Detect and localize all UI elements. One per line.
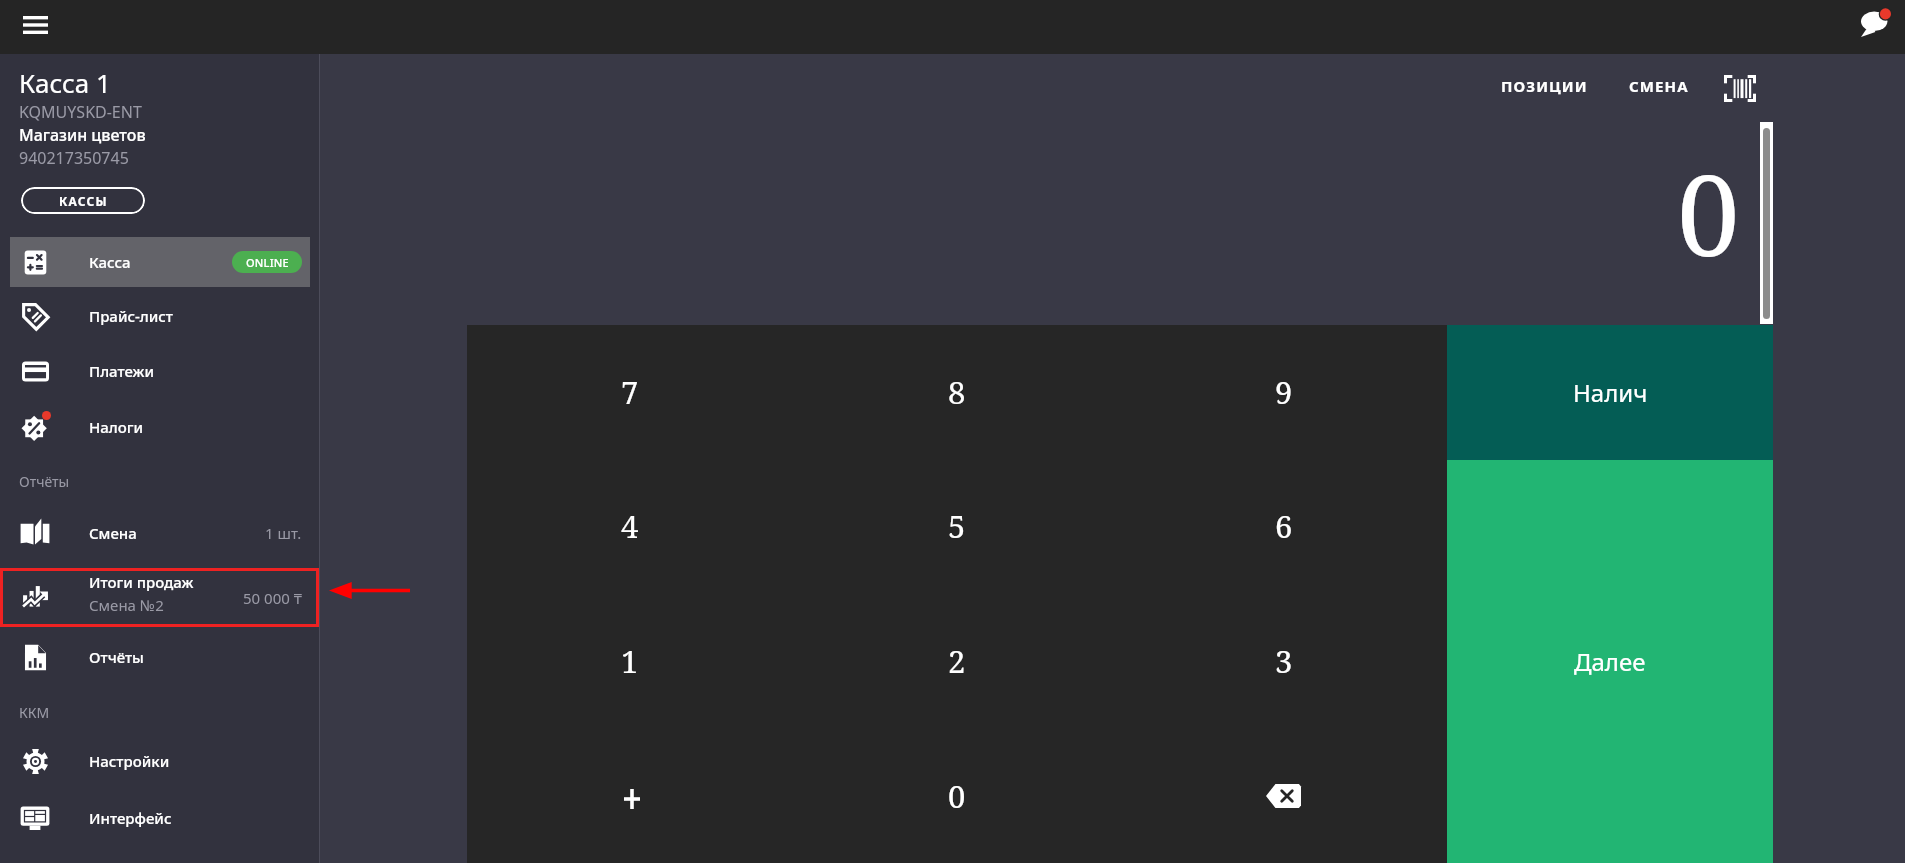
staticText: Отчёты bbox=[19, 472, 70, 491]
staticText: 8 bbox=[948, 371, 966, 413]
button[interactable]: 3 bbox=[1120, 593, 1447, 728]
staticText: Далее bbox=[1574, 645, 1646, 678]
button[interactable]: Backspace bbox=[1120, 728, 1447, 863]
staticText: Касса bbox=[89, 252, 131, 272]
button[interactable]: Налоги bbox=[0, 400, 319, 453]
staticText: 2 bbox=[948, 640, 966, 682]
staticText: Интерфейс bbox=[89, 808, 172, 828]
staticText: Настройки bbox=[89, 751, 170, 771]
staticText: 1 шт. bbox=[265, 523, 302, 543]
staticText: 9 bbox=[1275, 371, 1293, 413]
button[interactable]: Messages bbox=[1852, 0, 1900, 47]
button[interactable]: Платежи bbox=[0, 345, 319, 397]
staticText: Смена bbox=[89, 523, 137, 543]
staticText: 5 bbox=[948, 505, 966, 547]
button[interactable]: Настройки bbox=[0, 734, 319, 788]
button[interactable]: Налич bbox=[1447, 325, 1773, 460]
button[interactable]: Далее bbox=[1447, 460, 1773, 863]
button[interactable]: Scan barcode bbox=[1719, 67, 1761, 109]
button[interactable]: КАССЫ bbox=[21, 187, 145, 214]
staticText: 0 bbox=[1677, 136, 1740, 289]
staticText: Налич bbox=[1573, 376, 1648, 409]
staticText: СМЕНА bbox=[1629, 76, 1689, 96]
button[interactable] bbox=[467, 728, 793, 863]
staticText: Отчёты bbox=[89, 647, 144, 667]
staticText: KQMUYSKD-ENT bbox=[19, 101, 142, 123]
button[interactable]: 7 bbox=[467, 325, 793, 459]
staticText: Смена №2 bbox=[89, 595, 164, 615]
staticText: Налоги bbox=[89, 417, 144, 437]
button[interactable]: ПОЗИЦИИ bbox=[1493, 67, 1596, 105]
button[interactable]: Интерфейс bbox=[0, 791, 319, 845]
staticText: Итоги продаж bbox=[89, 572, 194, 592]
staticText: Прайс-лист bbox=[89, 306, 174, 326]
button[interactable]: 2 bbox=[793, 593, 1120, 728]
staticText: 0 bbox=[948, 775, 966, 817]
staticText: Магазин цветов bbox=[19, 124, 146, 146]
button[interactable]: Menu bbox=[11, 1, 59, 49]
button[interactable]: 4 bbox=[467, 459, 793, 593]
staticText: 3 bbox=[1275, 640, 1293, 682]
button[interactable]: Касса bbox=[10, 237, 310, 287]
button[interactable]: 1 bbox=[467, 593, 793, 728]
staticText: 6 bbox=[1275, 505, 1293, 547]
staticText: Платежи bbox=[89, 361, 155, 381]
button[interactable]: 0 bbox=[793, 728, 1120, 863]
button[interactable]: 8 bbox=[793, 325, 1120, 459]
button[interactable]: Смена bbox=[0, 506, 319, 560]
staticText: 7 bbox=[621, 371, 639, 413]
staticText: Касса 1 bbox=[19, 65, 111, 100]
button[interactable]: СМЕНА bbox=[1621, 67, 1697, 105]
staticText: КАССЫ bbox=[59, 193, 108, 209]
staticText: 940217350745 bbox=[19, 147, 129, 169]
staticText: 50 000 ₸ bbox=[243, 588, 302, 608]
staticText: 4 bbox=[621, 505, 639, 547]
button[interactable]: 9 bbox=[1120, 325, 1447, 459]
button[interactable]: 6 bbox=[1120, 459, 1447, 593]
button[interactable]: 5 bbox=[793, 459, 1120, 593]
button[interactable]: Итоги продаж bbox=[0, 568, 319, 627]
staticText: ККМ bbox=[19, 703, 50, 722]
staticText: 1 bbox=[621, 640, 639, 682]
button[interactable]: Отчёты bbox=[0, 630, 319, 684]
staticText: ПОЗИЦИИ bbox=[1501, 76, 1588, 96]
button[interactable]: Прайс-лист bbox=[0, 290, 319, 342]
staticText: ONLINE bbox=[246, 255, 289, 270]
